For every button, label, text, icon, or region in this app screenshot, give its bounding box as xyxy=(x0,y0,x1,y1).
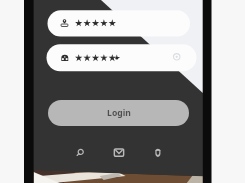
button[interactable]: Search xyxy=(66,140,94,166)
button[interactable]: Messages xyxy=(105,140,133,166)
button[interactable]: Security xyxy=(144,140,172,166)
button[interactable]: Login xyxy=(48,100,189,126)
staticText: Login xyxy=(107,107,131,119)
button[interactable]: Password field xyxy=(47,44,197,71)
button[interactable]: Show password xyxy=(170,50,184,64)
button[interactable]: Username field xyxy=(48,10,191,36)
